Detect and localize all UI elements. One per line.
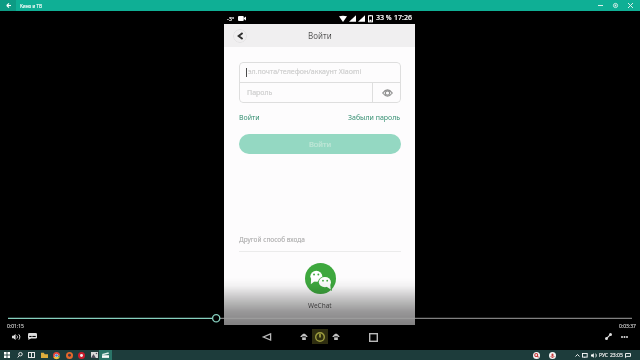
staticText: Забыли пароль bbox=[348, 113, 401, 123]
button[interactable]: Assistant bbox=[328, 328, 344, 344]
staticText: -3° bbox=[227, 15, 235, 22]
button[interactable]: More options bbox=[617, 329, 632, 344]
button[interactable]: Close bbox=[623, 0, 638, 11]
staticText: Войти bbox=[309, 139, 332, 149]
staticText: Пароль bbox=[247, 88, 273, 98]
button[interactable]: Back bbox=[233, 29, 247, 43]
staticText: 17:26 bbox=[394, 13, 412, 23]
button[interactable]: Movies and TV bbox=[99, 350, 112, 360]
button[interactable]: WeChat bbox=[239, 263, 401, 310]
staticText: эл.почта/телефон/аккаунт Xiaomi bbox=[248, 67, 362, 77]
button[interactable]: Opera bbox=[75, 350, 88, 360]
button[interactable]: Action center bbox=[623, 350, 633, 360]
button[interactable]: Show hidden icons bbox=[573, 350, 581, 360]
button[interactable]: Network bbox=[580, 350, 589, 360]
button[interactable]: Subtitles bbox=[25, 329, 40, 344]
button[interactable]: Back bbox=[0, 0, 16, 11]
button[interactable]: Start bbox=[0, 350, 13, 360]
button[interactable]: Пароль bbox=[239, 83, 372, 103]
staticText: 33 % bbox=[376, 13, 392, 23]
button[interactable]: File Explorer bbox=[38, 350, 51, 360]
button[interactable]: Minimize bbox=[593, 0, 608, 11]
staticText: 0:01:15 bbox=[7, 323, 24, 330]
button[interactable]: Fullscreen bbox=[601, 329, 616, 344]
staticText: WeChat bbox=[308, 301, 332, 310]
staticText: 23:05 bbox=[610, 352, 623, 359]
button[interactable]: Войти bbox=[239, 112, 260, 124]
button[interactable]: Search tray bbox=[531, 350, 542, 360]
button[interactable]: Assistant bbox=[296, 328, 312, 344]
button[interactable]: Show password bbox=[373, 83, 401, 103]
staticText: Другой способ входа bbox=[239, 235, 305, 244]
button[interactable]: Task view bbox=[25, 350, 38, 360]
button[interactable]: Photos bbox=[88, 350, 101, 360]
button[interactable]: Volume bbox=[8, 329, 23, 344]
button[interactable]: Language bbox=[598, 350, 610, 360]
button[interactable]: Chrome bbox=[50, 350, 63, 360]
button[interactable]: Restore bbox=[608, 0, 623, 11]
button[interactable]: Clock bbox=[609, 350, 623, 360]
button[interactable]: Войти bbox=[239, 134, 401, 154]
button[interactable]: Microphone bbox=[547, 350, 558, 360]
staticText: Войти bbox=[239, 113, 260, 123]
staticText: РУС bbox=[599, 352, 609, 359]
button[interactable]: Search bbox=[13, 350, 26, 360]
staticText: Кино и ТВ bbox=[20, 3, 43, 9]
button[interactable]: Забыли пароль bbox=[348, 112, 401, 124]
button[interactable]: Firefox bbox=[63, 350, 76, 360]
button[interactable]: эл.почта/телефон/аккаунт Xiaomi bbox=[239, 62, 401, 82]
staticText: Войти bbox=[308, 30, 332, 41]
button[interactable]: Volume bbox=[589, 350, 598, 360]
button[interactable]: Back bbox=[259, 329, 275, 345]
button[interactable]: Home bbox=[312, 329, 328, 344]
staticText: 0:03:37 bbox=[619, 323, 636, 330]
button[interactable]: Recents bbox=[365, 329, 381, 345]
